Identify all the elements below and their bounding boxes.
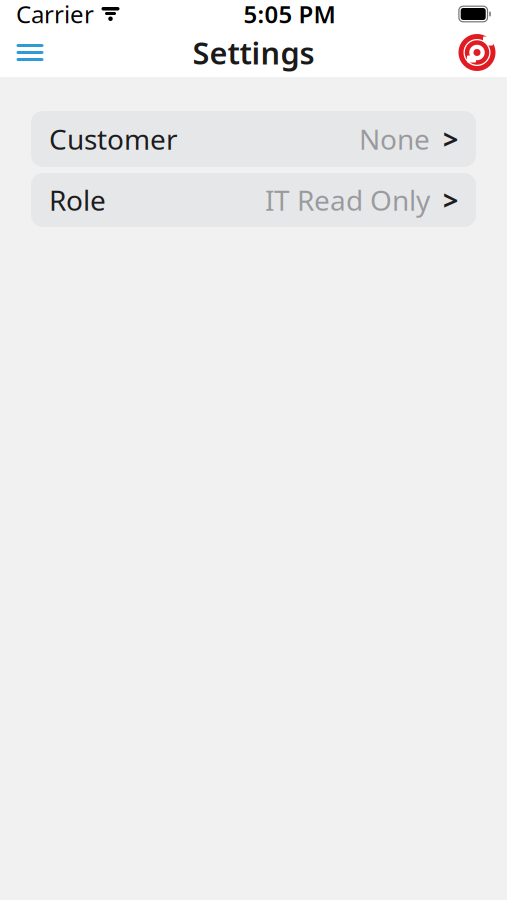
staticText: IT Read Only — [265, 181, 430, 219]
button[interactable]: Menu — [4, 28, 56, 77]
button[interactable]: Role — [31, 173, 476, 227]
staticText: Role — [49, 181, 106, 219]
staticText: None — [359, 120, 430, 158]
staticText: Carrier — [16, 0, 94, 30]
staticText: Customer — [49, 120, 178, 158]
staticText: > — [443, 121, 458, 157]
staticText: 5:05 PM — [243, 0, 335, 30]
button[interactable]: Customer — [31, 111, 476, 167]
staticText: > — [443, 182, 458, 218]
staticText: Settings — [192, 32, 314, 73]
button[interactable]: Account — [451, 28, 503, 77]
